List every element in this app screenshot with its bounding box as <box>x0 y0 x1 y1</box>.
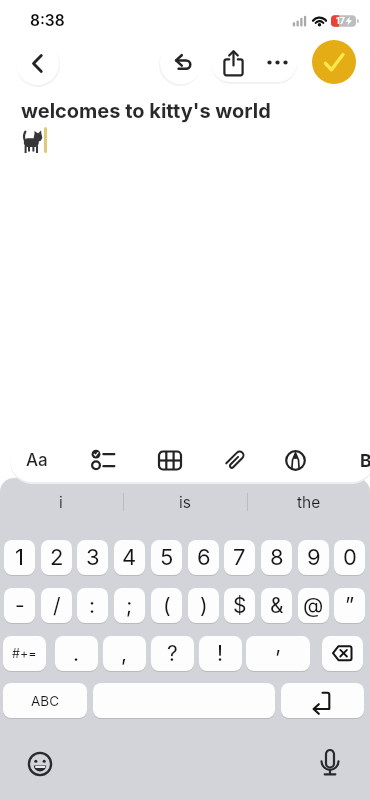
staticText: 1 <box>15 544 24 571</box>
button[interactable] <box>261 540 292 575</box>
button[interactable] <box>114 540 145 575</box>
staticText: ? <box>167 641 178 666</box>
staticText: i <box>59 493 63 512</box>
staticText: 4 <box>122 544 137 571</box>
staticText: & <box>270 593 284 618</box>
staticText: 3 <box>86 544 100 571</box>
staticText: 5 <box>160 544 174 571</box>
button[interactable] <box>246 636 310 671</box>
staticText: 0 <box>343 544 357 571</box>
staticText: ) <box>200 593 208 618</box>
staticText: ; <box>126 593 133 618</box>
button[interactable] <box>281 683 364 718</box>
button[interactable] <box>77 588 108 623</box>
button[interactable] <box>261 588 292 623</box>
button[interactable]: B <box>357 438 370 482</box>
button[interactable] <box>298 588 329 623</box>
button[interactable] <box>41 588 72 623</box>
button[interactable] <box>334 540 365 575</box>
staticText: $ <box>233 593 247 618</box>
staticText: welcomes to kitty's world <box>21 99 271 123</box>
staticText: 8:38 <box>30 11 65 30</box>
staticText: ABC <box>31 693 60 709</box>
staticText: ” <box>345 593 355 618</box>
button[interactable] <box>188 540 219 575</box>
button[interactable] <box>281 446 310 475</box>
button[interactable] <box>199 636 242 671</box>
button[interactable] <box>151 636 194 671</box>
button[interactable] <box>151 588 182 623</box>
button[interactable]: is <box>124 487 246 517</box>
button[interactable] <box>3 636 46 671</box>
staticText: ’ <box>275 646 281 671</box>
staticText: . <box>73 641 80 666</box>
staticText: / <box>53 593 61 618</box>
staticText: ( <box>163 593 171 618</box>
staticText: 7 <box>233 544 246 571</box>
staticText: is <box>179 493 191 512</box>
button[interactable] <box>261 46 294 79</box>
staticText: 17 <box>336 16 345 27</box>
staticText: : <box>89 593 96 618</box>
button[interactable] <box>188 588 219 623</box>
staticText: - <box>15 593 25 618</box>
staticText: , <box>121 641 128 666</box>
staticText: #+= <box>12 646 37 661</box>
staticText: @ <box>303 593 324 618</box>
button[interactable] <box>3 683 87 718</box>
staticText: B <box>360 450 370 471</box>
button[interactable] <box>334 588 365 623</box>
button[interactable] <box>217 46 250 79</box>
button[interactable] <box>77 540 108 575</box>
button[interactable] <box>16 42 59 85</box>
staticText: 8 <box>270 544 284 571</box>
button[interactable] <box>151 540 182 575</box>
button[interactable]: the <box>248 487 370 517</box>
staticText: ! <box>217 641 224 666</box>
button[interactable] <box>156 446 184 474</box>
staticText: 9 <box>307 544 321 571</box>
button[interactable]: Aa <box>22 438 52 482</box>
button[interactable] <box>55 636 98 671</box>
button[interactable] <box>4 588 35 623</box>
button[interactable] <box>224 540 255 575</box>
staticText: 2 <box>50 544 64 571</box>
button[interactable] <box>221 446 249 474</box>
staticText: Aa <box>26 450 48 471</box>
button[interactable] <box>4 540 35 575</box>
staticText: the <box>297 493 321 512</box>
button[interactable] <box>312 40 356 84</box>
button[interactable] <box>298 540 329 575</box>
button[interactable] <box>114 588 145 623</box>
button[interactable] <box>322 636 363 671</box>
button[interactable] <box>317 748 344 776</box>
staticText: 6 <box>197 544 211 571</box>
button[interactable] <box>41 540 72 575</box>
button[interactable] <box>86 444 118 476</box>
button[interactable] <box>26 750 54 778</box>
button[interactable] <box>160 42 202 84</box>
button[interactable] <box>93 683 275 718</box>
button[interactable]: i <box>0 487 122 517</box>
button[interactable] <box>103 636 146 671</box>
button[interactable] <box>224 588 255 623</box>
